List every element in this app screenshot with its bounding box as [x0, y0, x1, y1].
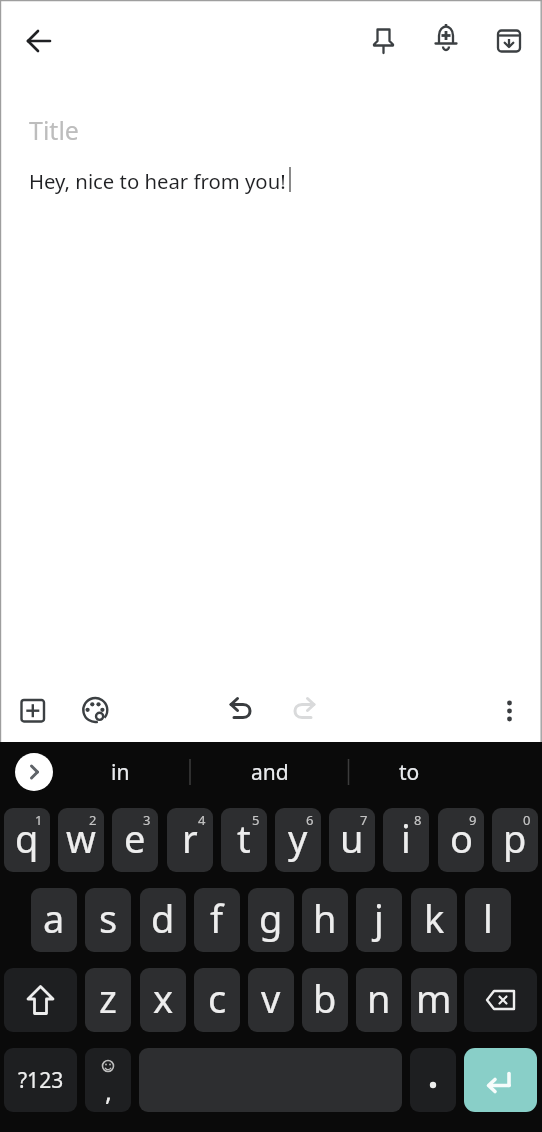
staticText: f	[210, 892, 224, 944]
button[interactable]: e	[112, 808, 158, 872]
button[interactable]: c	[194, 968, 240, 1032]
button[interactable]	[464, 968, 537, 1032]
staticText: 4	[198, 811, 206, 829]
button[interactable]	[281, 687, 329, 735]
staticText: y	[288, 812, 308, 864]
button[interactable]: a	[31, 888, 77, 952]
button[interactable]	[422, 17, 470, 65]
button[interactable]	[410, 1048, 456, 1112]
staticText: n	[367, 972, 391, 1024]
staticText: x	[153, 972, 174, 1024]
button[interactable]: j	[356, 888, 402, 952]
button[interactable]: x	[140, 968, 186, 1032]
staticText: 6	[306, 811, 314, 829]
button[interactable]: w	[58, 808, 104, 872]
button[interactable]: q	[4, 808, 50, 872]
button[interactable]: v	[248, 968, 294, 1032]
button[interactable]: s	[85, 888, 131, 952]
button[interactable]: h	[302, 888, 348, 952]
staticText: in	[111, 758, 130, 787]
button[interactable]	[71, 687, 119, 735]
staticText: to	[399, 758, 420, 787]
staticText: t	[237, 812, 251, 864]
button[interactable]: ,	[85, 1048, 131, 1112]
button[interactable]: and	[190, 742, 349, 802]
button[interactable]: ?123	[4, 1048, 77, 1112]
button[interactable]	[14, 17, 62, 65]
button[interactable]: in	[50, 742, 190, 802]
staticText: ,	[105, 1073, 112, 1108]
button[interactable]: t	[221, 808, 267, 872]
staticText: m	[416, 972, 452, 1024]
staticText: z	[99, 972, 117, 1024]
staticText: e	[124, 812, 146, 864]
staticText: i	[401, 812, 411, 864]
button[interactable]	[486, 687, 534, 735]
staticText: w	[66, 812, 96, 864]
button[interactable]	[216, 687, 264, 735]
button[interactable]: u	[329, 808, 375, 872]
button[interactable]: y	[275, 808, 321, 872]
staticText: 8	[414, 811, 422, 829]
button[interactable]	[359, 17, 407, 65]
staticText: 1	[35, 811, 43, 829]
staticText: u	[340, 812, 364, 864]
staticText: 3	[143, 811, 151, 829]
button[interactable]	[464, 1048, 537, 1112]
staticText: h	[313, 892, 337, 944]
button[interactable]: m	[411, 968, 457, 1032]
button[interactable]: k	[411, 888, 457, 952]
button[interactable]: r	[167, 808, 213, 872]
button[interactable]: d	[140, 888, 186, 952]
staticText: k	[424, 892, 445, 944]
button[interactable]: p	[492, 808, 538, 872]
staticText: v	[261, 972, 281, 1024]
button[interactable]: b	[302, 968, 348, 1032]
staticText: 5	[252, 811, 260, 829]
staticText: p	[503, 812, 527, 864]
staticText: b	[313, 972, 337, 1024]
button[interactable]: n	[356, 968, 402, 1032]
staticText: 0	[523, 811, 531, 829]
button[interactable]: to	[349, 742, 470, 802]
staticText: r	[182, 812, 198, 864]
button[interactable]	[9, 687, 57, 735]
button[interactable]: f	[194, 888, 240, 952]
staticText: and	[251, 758, 289, 787]
staticText: s	[99, 892, 118, 944]
staticText: a	[43, 892, 65, 944]
staticText: Hey, nice to hear from you!	[29, 167, 286, 195]
button[interactable]: o	[438, 808, 484, 872]
button[interactable]: g	[248, 888, 294, 952]
staticText: c	[208, 972, 227, 1024]
button[interactable]: i	[383, 808, 429, 872]
staticText: q	[15, 812, 39, 864]
button[interactable]	[15, 753, 53, 791]
staticText: 7	[360, 811, 368, 829]
staticText: o	[450, 812, 473, 864]
staticText: ?123	[18, 1066, 64, 1095]
button[interactable]: l	[465, 888, 511, 952]
staticText: 9	[469, 811, 477, 829]
button[interactable]: z	[85, 968, 131, 1032]
button[interactable]	[485, 17, 533, 65]
staticText: Title	[29, 113, 79, 147]
staticText: d	[151, 892, 175, 944]
staticText: j	[374, 892, 384, 944]
staticText: l	[483, 892, 493, 944]
button[interactable]	[4, 968, 77, 1032]
staticText: g	[259, 892, 283, 944]
staticText: 2	[89, 811, 97, 829]
